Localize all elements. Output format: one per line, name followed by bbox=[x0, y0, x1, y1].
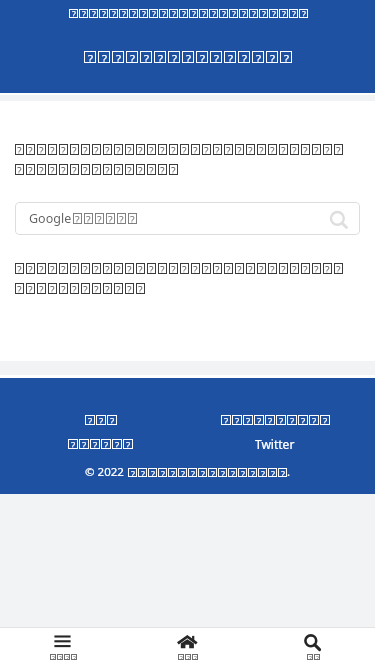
staticText: ? bbox=[242, 9, 246, 18]
staticText: ? bbox=[282, 9, 286, 18]
button[interactable]: ? bbox=[67, 439, 133, 449]
staticText: ? bbox=[182, 263, 187, 274]
staticText: ? bbox=[94, 263, 99, 274]
button[interactable]: ? bbox=[84, 415, 117, 425]
button[interactable]: Twitter bbox=[255, 436, 295, 452]
staticText: ? bbox=[149, 263, 154, 274]
button[interactable]: ? bbox=[220, 415, 330, 425]
button[interactable]: Google bbox=[15, 202, 360, 235]
staticText: ? bbox=[102, 9, 106, 18]
staticText: ? bbox=[171, 263, 176, 274]
staticText: ? bbox=[116, 263, 121, 274]
staticText: ? bbox=[50, 263, 55, 274]
staticText: ? bbox=[61, 164, 66, 175]
staticText: ? bbox=[93, 439, 98, 449]
staticText: ? bbox=[259, 263, 264, 274]
staticText: Google bbox=[29, 210, 72, 227]
staticText: ? bbox=[116, 51, 121, 63]
staticText: ? bbox=[116, 283, 121, 294]
staticText: ? bbox=[130, 51, 135, 63]
staticText: ? bbox=[132, 9, 136, 18]
staticText: ? bbox=[336, 263, 341, 274]
other: Search bbox=[330, 211, 350, 231]
staticText: ? bbox=[138, 144, 143, 155]
staticText: ? bbox=[116, 144, 121, 155]
staticText: ? bbox=[182, 9, 186, 18]
staticText: ? bbox=[336, 144, 341, 155]
staticText: ? bbox=[222, 9, 226, 18]
staticText: ? bbox=[314, 144, 319, 155]
staticText: ? bbox=[105, 283, 110, 294]
staticText: ? bbox=[28, 283, 33, 294]
staticText: ? bbox=[181, 468, 185, 477]
staticText: ? bbox=[141, 468, 145, 477]
staticText: ? bbox=[232, 9, 236, 18]
staticText: ? bbox=[281, 144, 286, 155]
staticText: ? bbox=[102, 51, 107, 63]
staticText: ? bbox=[130, 213, 135, 224]
staticText: ? bbox=[39, 144, 44, 155]
staticText: ? bbox=[110, 415, 115, 425]
staticText: ? bbox=[122, 9, 126, 18]
staticText: ? bbox=[270, 263, 275, 274]
staticText: ? bbox=[160, 164, 165, 175]
button[interactable]: Home bbox=[125, 627, 250, 667]
staticText: ? bbox=[303, 263, 308, 274]
staticText: ? bbox=[270, 51, 275, 63]
staticText: ? bbox=[171, 468, 175, 477]
button[interactable]: Search bbox=[250, 627, 375, 667]
staticText: ? bbox=[152, 9, 156, 18]
staticText: ? bbox=[50, 144, 55, 155]
staticText: ? bbox=[323, 415, 328, 425]
staticText: ? bbox=[142, 9, 146, 18]
staticText: ? bbox=[160, 263, 165, 274]
staticText: ? bbox=[66, 654, 69, 660]
staticText: ? bbox=[92, 9, 96, 18]
staticText: ? bbox=[72, 164, 77, 175]
staticText: ? bbox=[211, 468, 215, 477]
staticText: ? bbox=[292, 263, 297, 274]
staticText: ? bbox=[221, 468, 225, 477]
staticText: ? bbox=[127, 263, 132, 274]
staticText: ? bbox=[193, 263, 198, 274]
staticText: ? bbox=[226, 263, 231, 274]
staticText: ? bbox=[248, 144, 253, 155]
staticText: ? bbox=[83, 144, 88, 155]
staticText: ? bbox=[127, 283, 132, 294]
staticText: ? bbox=[251, 468, 255, 477]
staticText: ? bbox=[302, 9, 306, 18]
staticText: ? bbox=[172, 9, 176, 18]
staticText: ? bbox=[252, 9, 256, 18]
staticText: ? bbox=[88, 415, 93, 425]
staticText: ? bbox=[61, 283, 66, 294]
staticText: ? bbox=[72, 283, 77, 294]
button[interactable]: Menu bbox=[0, 627, 125, 667]
staticText: ? bbox=[149, 144, 154, 155]
staticText: ? bbox=[204, 263, 209, 274]
staticText: ? bbox=[180, 654, 183, 660]
staticText: ? bbox=[241, 468, 245, 477]
staticText: © 2022 bbox=[85, 464, 127, 480]
staticText: ? bbox=[228, 51, 233, 63]
staticText: ? bbox=[231, 468, 235, 477]
staticText: ? bbox=[257, 415, 262, 425]
staticText: ? bbox=[131, 468, 135, 477]
staticText: ? bbox=[272, 9, 276, 18]
staticText: ? bbox=[116, 164, 121, 175]
staticText: ? bbox=[186, 51, 191, 63]
staticText: ? bbox=[82, 9, 86, 18]
staticText: ? bbox=[94, 283, 99, 294]
staticText: ? bbox=[50, 164, 55, 175]
staticText: ? bbox=[105, 263, 110, 274]
staticText: ? bbox=[281, 468, 285, 477]
staticText: ? bbox=[202, 9, 206, 18]
staticText: ? bbox=[86, 213, 91, 224]
staticText: ? bbox=[151, 468, 155, 477]
staticText: ? bbox=[256, 51, 261, 63]
staticText: ? bbox=[303, 144, 308, 155]
staticText: ? bbox=[214, 51, 219, 63]
staticText: ? bbox=[73, 654, 76, 660]
staticText: ? bbox=[28, 144, 33, 155]
staticText: ? bbox=[301, 415, 306, 425]
staticText: ? bbox=[39, 164, 44, 175]
